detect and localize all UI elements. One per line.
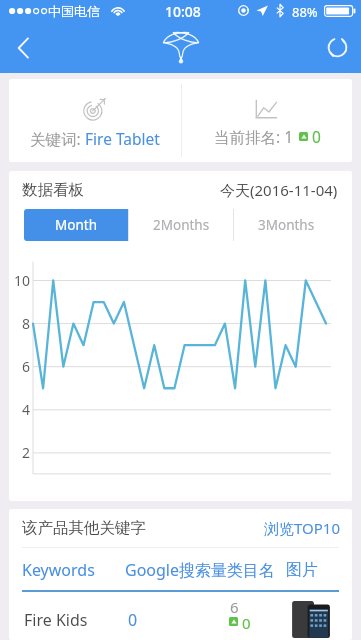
- staticText: 10: [14, 271, 31, 290]
- staticText: 88%: [292, 3, 318, 21]
- staticText: Month: [55, 216, 97, 234]
- staticText: 中国电信: [48, 3, 100, 19]
- staticText: 8: [22, 314, 31, 333]
- button[interactable]: Keywords: [22, 559, 95, 581]
- staticText: 0: [312, 126, 321, 147]
- staticText: 数据看板: [22, 180, 84, 200]
- staticText: 4: [22, 400, 31, 419]
- staticText: 关键词:: [30, 128, 85, 149]
- staticText: 6: [22, 357, 31, 376]
- button[interactable]: Google搜索量类目名: [125, 559, 276, 581]
- staticText: 2Months: [153, 216, 210, 234]
- staticText: Keywords: [22, 559, 95, 581]
- button[interactable]: Month: [24, 209, 128, 241]
- staticText: Google搜索量类目名: [125, 559, 276, 581]
- button[interactable]: 浏览TOP10: [264, 518, 340, 538]
- button[interactable]: Fire Kids: [9, 592, 352, 640]
- staticText: 该产品其他关键字: [22, 518, 146, 538]
- button[interactable]: 当前排名: 1: [182, 79, 352, 162]
- button[interactable]: 图片: [286, 560, 318, 580]
- button[interactable]: Back: [0, 22, 46, 73]
- staticText: 当前排名: 1: [214, 126, 294, 147]
- staticText: 6: [230, 597, 239, 617]
- staticText: 0: [242, 613, 251, 633]
- staticText: 0: [128, 609, 138, 631]
- staticText: 今天(2016-11-04): [220, 180, 338, 200]
- staticText: 图片: [286, 560, 318, 580]
- staticText: 浏览TOP10: [264, 518, 340, 538]
- staticText: 3Months: [258, 216, 315, 234]
- button[interactable]: 3Months: [234, 209, 338, 241]
- button[interactable]: Refresh: [313, 22, 361, 73]
- staticText: Fire Kids: [24, 609, 88, 631]
- staticText: Fire Tablet: [85, 128, 160, 149]
- button[interactable]: 2Months: [129, 209, 233, 241]
- staticText: 10:08: [165, 2, 201, 21]
- staticText: 2: [22, 443, 31, 462]
- button[interactable]: 关键词:: [9, 79, 181, 162]
